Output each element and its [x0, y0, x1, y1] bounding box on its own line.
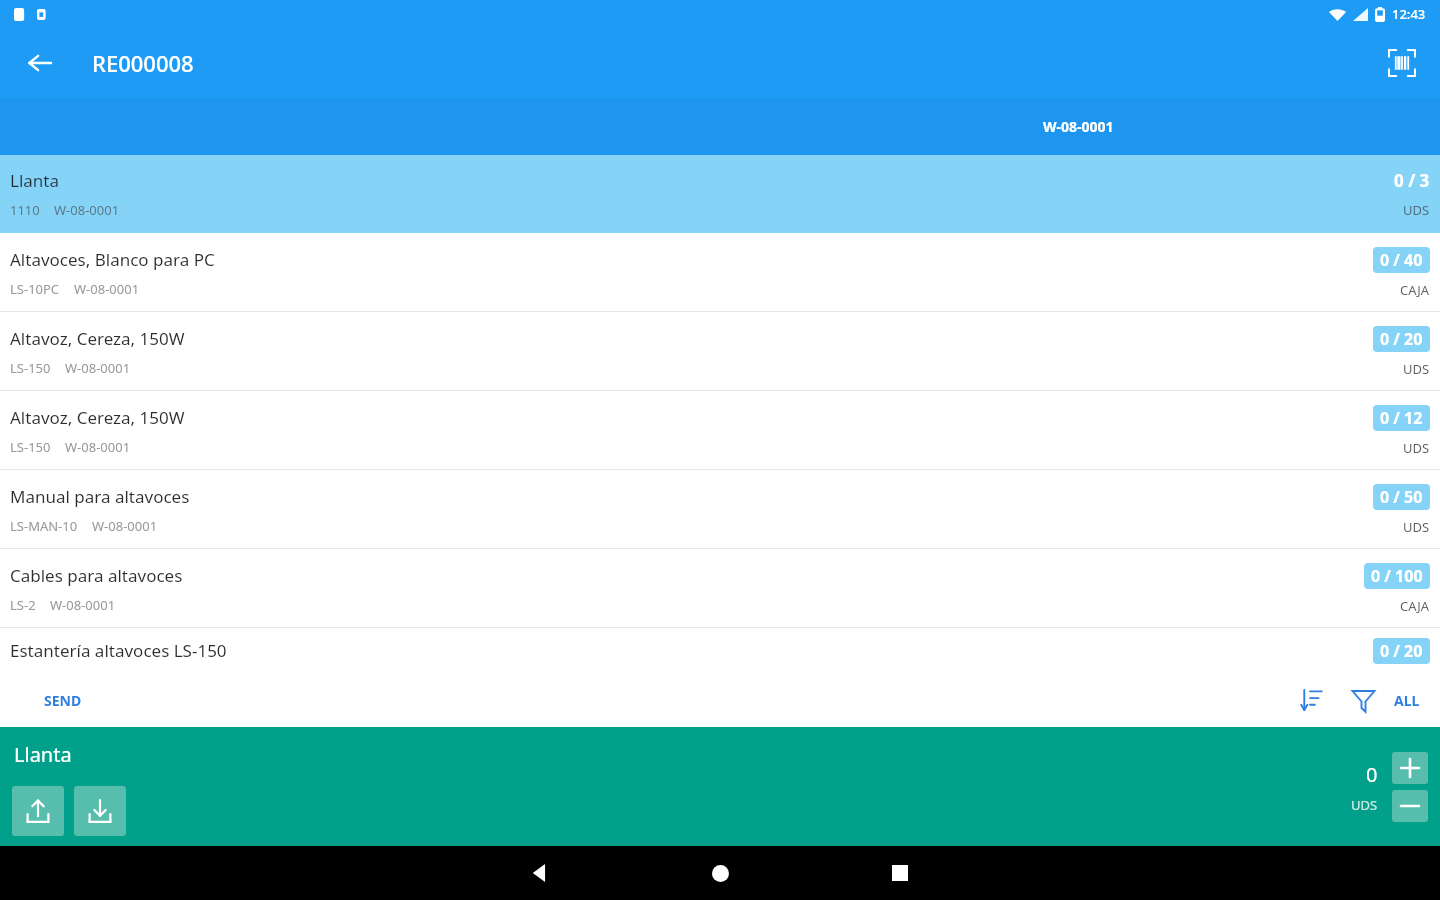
staticText: LS-MAN-10	[10, 517, 78, 535]
button[interactable]: Estantería altavoces LS-150	[0, 628, 1440, 673]
button[interactable]: Llanta	[0, 155, 1440, 233]
button[interactable]: Altavoces, Blanco para PC	[0, 233, 1440, 312]
staticText: UDS	[1403, 201, 1430, 219]
staticText: 0 / 20	[1380, 640, 1423, 662]
staticText: W-08-0001	[65, 438, 131, 456]
staticText: 0	[1366, 761, 1378, 788]
staticText: W-08-0001	[74, 280, 140, 298]
staticText: 0 / 20	[1380, 328, 1423, 350]
button[interactable]: Scan barcode	[1376, 37, 1428, 89]
button[interactable]: Cables para altavoces	[0, 549, 1440, 628]
staticText: 0 / 40	[1380, 249, 1423, 271]
button[interactable]: ALL	[1388, 683, 1426, 718]
staticText: CAJA	[1400, 597, 1430, 615]
staticText: 12:43	[1392, 5, 1426, 23]
button[interactable]: Upload	[12, 786, 64, 836]
button[interactable]: Altavoz, Cereza, 150W	[0, 312, 1440, 391]
staticText: LS-150	[10, 438, 51, 456]
staticText: UDS	[1403, 439, 1430, 457]
staticText: LS-150	[10, 359, 51, 377]
button[interactable]: SEND	[30, 683, 96, 718]
button[interactable]: Decrease	[1392, 790, 1428, 822]
staticText: 0 / 3	[1394, 169, 1430, 192]
button[interactable]: Altavoz, Cereza, 150W	[0, 391, 1440, 470]
staticText: Altavoz, Cereza, 150W	[10, 327, 185, 350]
staticText: ALL	[1394, 691, 1420, 710]
staticText: Llanta	[14, 741, 72, 768]
button[interactable]: Download	[74, 786, 126, 836]
staticText: LS-10PC	[10, 280, 60, 298]
staticText: W-08-0001	[50, 596, 116, 614]
staticText: Estantería altavoces LS-150	[10, 639, 227, 662]
staticText: 0 / 12	[1380, 407, 1423, 429]
staticText: Manual para altavoces	[10, 485, 190, 508]
button[interactable]: Back	[480, 846, 600, 900]
staticText: RE000008	[92, 48, 194, 78]
button[interactable]: Back	[14, 37, 66, 89]
staticText: Cables para altavoces	[10, 564, 183, 587]
staticText: Altavoces, Blanco para PC	[10, 248, 215, 271]
button[interactable]: Sort	[1288, 677, 1334, 723]
staticText: 0 / 50	[1380, 486, 1423, 508]
staticText: 1110	[10, 201, 40, 219]
button[interactable]: Recent apps	[840, 846, 960, 900]
button[interactable]: Manual para altavoces	[0, 470, 1440, 549]
staticText: UDS	[1403, 360, 1430, 378]
staticText: SEND	[44, 691, 82, 710]
staticText: W-08-0001	[92, 517, 158, 535]
staticText: Altavoz, Cereza, 150W	[10, 406, 185, 429]
staticText: CAJA	[1400, 281, 1430, 299]
staticText: W-08-0001	[54, 201, 120, 219]
staticText: 0 / 100	[1371, 565, 1423, 587]
button[interactable]: Filter	[1340, 677, 1386, 723]
staticText: LS-2	[10, 596, 36, 614]
staticText: Llanta	[10, 169, 60, 192]
button[interactable]: Home	[660, 846, 780, 900]
staticText: W-08-0001	[1043, 117, 1114, 136]
staticText: UDS	[1351, 796, 1378, 814]
button[interactable]: Increase	[1392, 752, 1428, 784]
staticText: UDS	[1403, 518, 1430, 536]
staticText: W-08-0001	[65, 359, 131, 377]
